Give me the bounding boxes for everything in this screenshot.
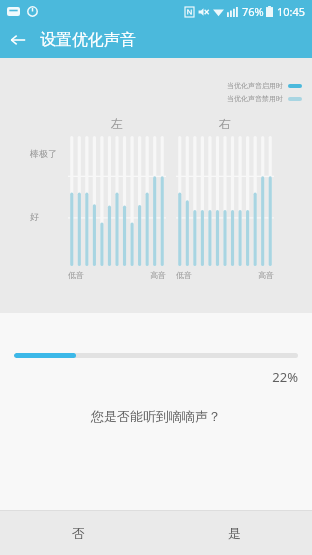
staticText: 当优化声音启用时 bbox=[227, 81, 283, 90]
staticText: 10:45 bbox=[277, 4, 306, 19]
staticText: 设置优化声音 bbox=[40, 30, 136, 50]
staticText: 是 bbox=[228, 525, 241, 541]
staticText: 棒极了 bbox=[30, 148, 57, 159]
staticText: 好 bbox=[30, 211, 39, 222]
staticText: 否 bbox=[72, 525, 85, 541]
button[interactable]: Back bbox=[0, 22, 36, 58]
staticText: 当优化声音禁用时 bbox=[227, 94, 283, 103]
staticText: 低音 bbox=[68, 270, 84, 280]
staticText: 左 bbox=[111, 116, 123, 131]
button[interactable]: 否 bbox=[0, 511, 156, 555]
staticText: 您是否能听到嘀嘀声？ bbox=[0, 408, 312, 424]
staticText: 高音 bbox=[150, 270, 166, 280]
button[interactable]: 是 bbox=[156, 511, 312, 555]
staticText: 低音 bbox=[176, 270, 192, 280]
staticText: 高音 bbox=[258, 270, 274, 280]
staticText: 右 bbox=[219, 116, 231, 131]
staticText: 22% bbox=[14, 368, 298, 386]
staticText: 76% bbox=[242, 4, 264, 19]
